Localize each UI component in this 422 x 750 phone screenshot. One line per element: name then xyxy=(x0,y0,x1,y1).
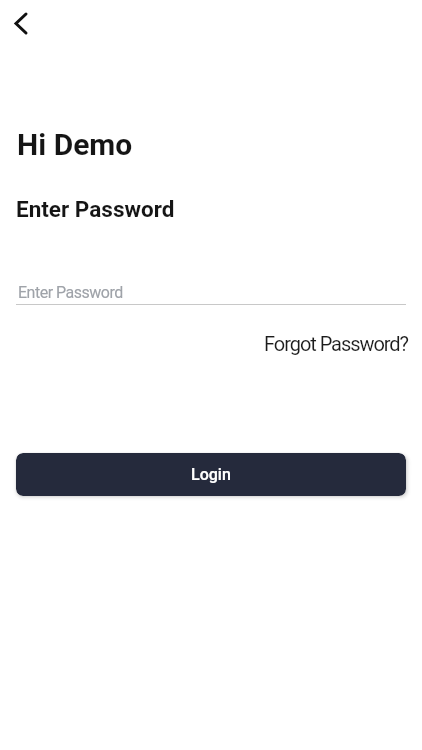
staticText: Forgot Password? xyxy=(264,332,408,355)
staticText: Enter Password xyxy=(16,196,175,222)
button[interactable]: Forgot Password? xyxy=(264,332,408,355)
staticText: Hi Demo xyxy=(17,127,133,162)
button[interactable] xyxy=(2,4,40,42)
staticText: Login xyxy=(191,465,231,484)
button[interactable]: Login xyxy=(16,453,406,496)
staticText: Enter Password xyxy=(18,283,123,302)
